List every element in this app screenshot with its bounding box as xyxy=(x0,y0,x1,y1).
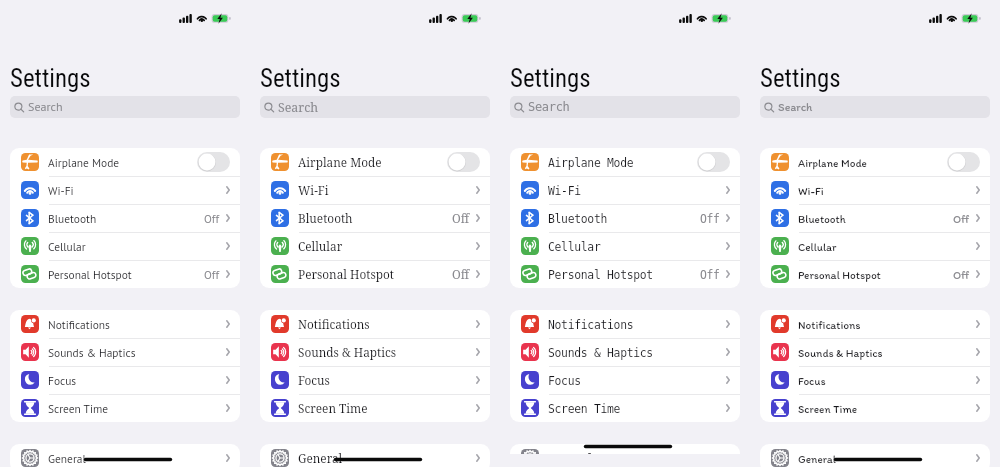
button[interactable]: Personal Hotspot xyxy=(10,260,240,288)
button[interactable]: Sounds & Haptics xyxy=(760,338,990,366)
staticText: Off xyxy=(452,210,470,226)
staticText: Screen Time xyxy=(548,402,621,415)
button[interactable]: Airplane Mode xyxy=(510,148,740,176)
staticText: Search xyxy=(28,99,63,115)
button[interactable]: Personal Hotspot xyxy=(260,260,490,288)
staticText: Wi-Fi xyxy=(798,184,824,197)
staticText: Cellular xyxy=(48,239,86,254)
button[interactable]: Cellular xyxy=(260,232,490,260)
button[interactable]: Cellular xyxy=(760,232,990,260)
button[interactable]: Notifications xyxy=(260,310,490,338)
staticText: Focus xyxy=(298,372,330,388)
button[interactable]: Sounds & Haptics xyxy=(260,338,490,366)
staticText: Notifications xyxy=(298,316,370,332)
staticText: Cellular xyxy=(798,240,837,253)
button[interactable]: Cellular xyxy=(510,232,740,260)
staticText: Off xyxy=(700,268,720,281)
button[interactable]: Airplane Mode xyxy=(10,148,240,176)
staticText: Personal Hotspot xyxy=(48,267,132,282)
staticText: Screen Time xyxy=(798,402,858,415)
button[interactable]: General xyxy=(260,444,490,467)
button[interactable]: Screen Time xyxy=(260,394,490,422)
button[interactable]: Search xyxy=(510,96,740,118)
button[interactable]: General xyxy=(10,444,240,467)
staticText: General xyxy=(798,452,836,465)
button[interactable]: General xyxy=(510,444,740,454)
button[interactable]: Focus xyxy=(760,366,990,394)
staticText: Bluetooth xyxy=(48,211,97,226)
staticText: General xyxy=(548,452,594,454)
staticText: Personal Hotspot xyxy=(298,266,394,282)
button[interactable]: Screen Time xyxy=(760,394,990,422)
staticText: Focus xyxy=(548,374,581,387)
button[interactable]: Focus xyxy=(510,366,740,394)
button[interactable]: Search xyxy=(760,96,990,118)
button[interactable]: General xyxy=(760,444,990,467)
staticText: Wi-Fi xyxy=(48,183,74,198)
staticText: Settings xyxy=(10,64,91,93)
button[interactable]: Wi-Fi xyxy=(510,176,740,204)
staticText: Bluetooth xyxy=(548,212,608,225)
button[interactable]: Wi-Fi xyxy=(760,176,990,204)
staticText: Personal Hotspot xyxy=(798,268,881,281)
staticText: Airplane Mode xyxy=(548,156,634,169)
staticText: Cellular xyxy=(548,240,601,253)
staticText: General xyxy=(298,450,343,466)
button[interactable]: Screen Time xyxy=(10,394,240,422)
button[interactable]: Search xyxy=(10,96,240,118)
staticText: Off xyxy=(953,212,970,225)
staticText: Bluetooth xyxy=(298,210,353,226)
staticText: Cellular xyxy=(298,238,343,254)
button[interactable]: Search xyxy=(260,96,490,118)
button[interactable]: Notifications xyxy=(760,310,990,338)
button[interactable]: Airplane Mode toggle xyxy=(947,152,980,172)
staticText: Sounds & Haptics xyxy=(298,344,397,360)
button[interactable]: Notifications xyxy=(510,310,740,338)
staticText: Search xyxy=(528,100,570,114)
staticText: Wi-Fi xyxy=(298,182,329,198)
staticText: Off xyxy=(452,266,470,282)
staticText: Search xyxy=(778,100,813,114)
staticText: Personal Hotspot xyxy=(548,268,653,281)
button[interactable]: Airplane Mode toggle xyxy=(697,152,730,172)
button[interactable]: Screen Time xyxy=(510,394,740,422)
staticText: Off xyxy=(700,212,720,225)
button[interactable]: Bluetooth xyxy=(260,204,490,232)
staticText: Airplane Mode xyxy=(298,154,382,170)
staticText: Focus xyxy=(798,374,826,387)
staticText: Bluetooth xyxy=(798,212,846,225)
staticText: Airplane Mode xyxy=(48,155,120,170)
staticText: General xyxy=(48,451,86,466)
button[interactable]: Cellular xyxy=(10,232,240,260)
staticText: Focus xyxy=(48,373,77,388)
button[interactable]: Wi-Fi xyxy=(10,176,240,204)
button[interactable]: Sounds & Haptics xyxy=(510,338,740,366)
staticText: Screen Time xyxy=(298,400,368,416)
staticText: Screen Time xyxy=(48,401,109,416)
button[interactable]: Bluetooth xyxy=(10,204,240,232)
button[interactable]: Wi-Fi xyxy=(260,176,490,204)
staticText: Settings xyxy=(260,64,341,93)
button[interactable]: Sounds & Haptics xyxy=(10,338,240,366)
button[interactable]: Airplane Mode xyxy=(260,148,490,176)
staticText: Off xyxy=(204,211,220,226)
staticText: Notifications xyxy=(798,318,861,331)
button[interactable]: Airplane Mode xyxy=(760,148,990,176)
staticText: Sounds & Haptics xyxy=(798,346,883,359)
button[interactable]: Airplane Mode toggle xyxy=(197,152,230,172)
button[interactable]: Bluetooth xyxy=(760,204,990,232)
button[interactable]: Focus xyxy=(10,366,240,394)
staticText: Wi-Fi xyxy=(548,184,581,197)
button[interactable]: Personal Hotspot xyxy=(760,260,990,288)
button[interactable]: Focus xyxy=(260,366,490,394)
button[interactable]: Personal Hotspot xyxy=(510,260,740,288)
staticText: Settings xyxy=(760,64,841,93)
staticText: Settings xyxy=(510,64,591,93)
staticText: Notifications xyxy=(48,317,110,332)
staticText: Search xyxy=(278,99,319,116)
staticText: Off xyxy=(953,268,970,281)
button[interactable]: Airplane Mode toggle xyxy=(447,152,480,172)
staticText: Airplane Mode xyxy=(798,156,867,169)
button[interactable]: Notifications xyxy=(10,310,240,338)
button[interactable]: Bluetooth xyxy=(510,204,740,232)
